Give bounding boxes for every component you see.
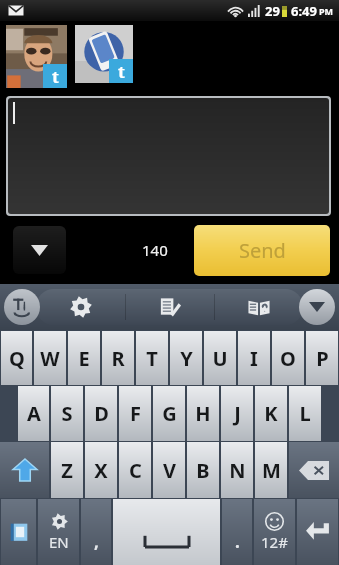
button[interactable]: Space	[113, 499, 220, 565]
staticText: P	[316, 345, 329, 372]
button[interactable]: Dictionary help	[215, 289, 303, 325]
staticText: W	[40, 345, 60, 372]
button[interactable]: N	[221, 442, 253, 498]
staticText: D	[94, 400, 109, 427]
button[interactable]: K	[255, 386, 287, 441]
staticText: M	[262, 457, 281, 484]
staticText: I	[250, 345, 258, 372]
button[interactable]: Symbols	[254, 499, 295, 565]
staticText: t	[118, 60, 125, 83]
staticText: H	[195, 400, 211, 427]
button[interactable]: Account 1	[6, 25, 67, 88]
button[interactable]: U	[204, 331, 236, 385]
staticText: K	[264, 400, 278, 427]
staticText: B	[196, 457, 210, 484]
button[interactable]: V	[153, 442, 185, 498]
button[interactable]: Backspace	[289, 442, 339, 498]
staticText: .	[235, 530, 240, 553]
button[interactable]: Hide keyboard	[299, 289, 335, 325]
button[interactable]	[8, 98, 329, 214]
staticText: Z	[61, 457, 73, 484]
button[interactable]: E	[68, 331, 100, 385]
button[interactable]: R	[102, 331, 134, 385]
staticText: 6:49	[291, 2, 317, 20]
button[interactable]: W	[34, 331, 66, 385]
button[interactable]: D	[85, 386, 117, 441]
button[interactable]: C	[119, 442, 151, 498]
button[interactable]: H	[187, 386, 219, 441]
staticText: J	[234, 400, 241, 427]
button[interactable]: M	[255, 442, 287, 498]
staticText: S	[61, 400, 73, 427]
button[interactable]: B	[187, 442, 219, 498]
button[interactable]: S	[51, 386, 83, 441]
button[interactable]: F	[119, 386, 151, 441]
button[interactable]: More options	[13, 226, 66, 274]
button[interactable]: .	[222, 499, 252, 565]
staticText: X	[94, 457, 108, 484]
staticText: 140	[142, 240, 168, 260]
staticText: T	[146, 345, 158, 372]
staticText: U	[212, 345, 228, 372]
button[interactable]: L	[289, 386, 321, 441]
button[interactable]: Notes	[126, 289, 214, 325]
button[interactable]: Settings	[36, 289, 125, 325]
button[interactable]: Dictionary	[1, 499, 36, 565]
button[interactable]: X	[85, 442, 117, 498]
button[interactable]: Input method	[4, 289, 40, 325]
button[interactable]: Z	[51, 442, 83, 498]
staticText: G	[162, 400, 177, 427]
button[interactable]: G	[153, 386, 185, 441]
staticText: E	[78, 345, 90, 372]
staticText: N	[229, 457, 246, 484]
button[interactable]: Send	[194, 225, 330, 276]
staticText: 12#	[261, 532, 288, 552]
staticText: C	[129, 457, 142, 484]
button[interactable]: A	[18, 386, 49, 441]
staticText: L	[299, 400, 311, 427]
staticText: O	[280, 345, 296, 372]
staticText: Y	[180, 345, 193, 372]
button[interactable]: O	[272, 331, 304, 385]
staticText: Q	[9, 345, 25, 372]
staticText: t	[52, 65, 59, 88]
button[interactable]: Enter	[297, 499, 338, 565]
button[interactable]: Language	[38, 499, 79, 565]
button[interactable]: Y	[170, 331, 202, 385]
staticText: Send	[239, 237, 286, 264]
button[interactable]: Account 2	[75, 25, 133, 83]
staticText: EN	[49, 532, 69, 552]
staticText: V	[163, 457, 176, 484]
button[interactable]: J	[221, 386, 253, 441]
button[interactable]: T	[136, 331, 168, 385]
button[interactable]: Shift	[0, 442, 49, 498]
button[interactable]: P	[306, 331, 338, 385]
staticText: R	[111, 345, 125, 372]
staticText: PM	[319, 5, 334, 17]
staticText: 29	[265, 2, 280, 20]
button[interactable]: Q	[1, 331, 32, 385]
staticText: A	[27, 400, 41, 427]
button[interactable]: ,	[81, 499, 111, 565]
staticText: ,	[94, 530, 99, 553]
staticText: F	[130, 400, 141, 427]
button[interactable]: I	[238, 331, 270, 385]
